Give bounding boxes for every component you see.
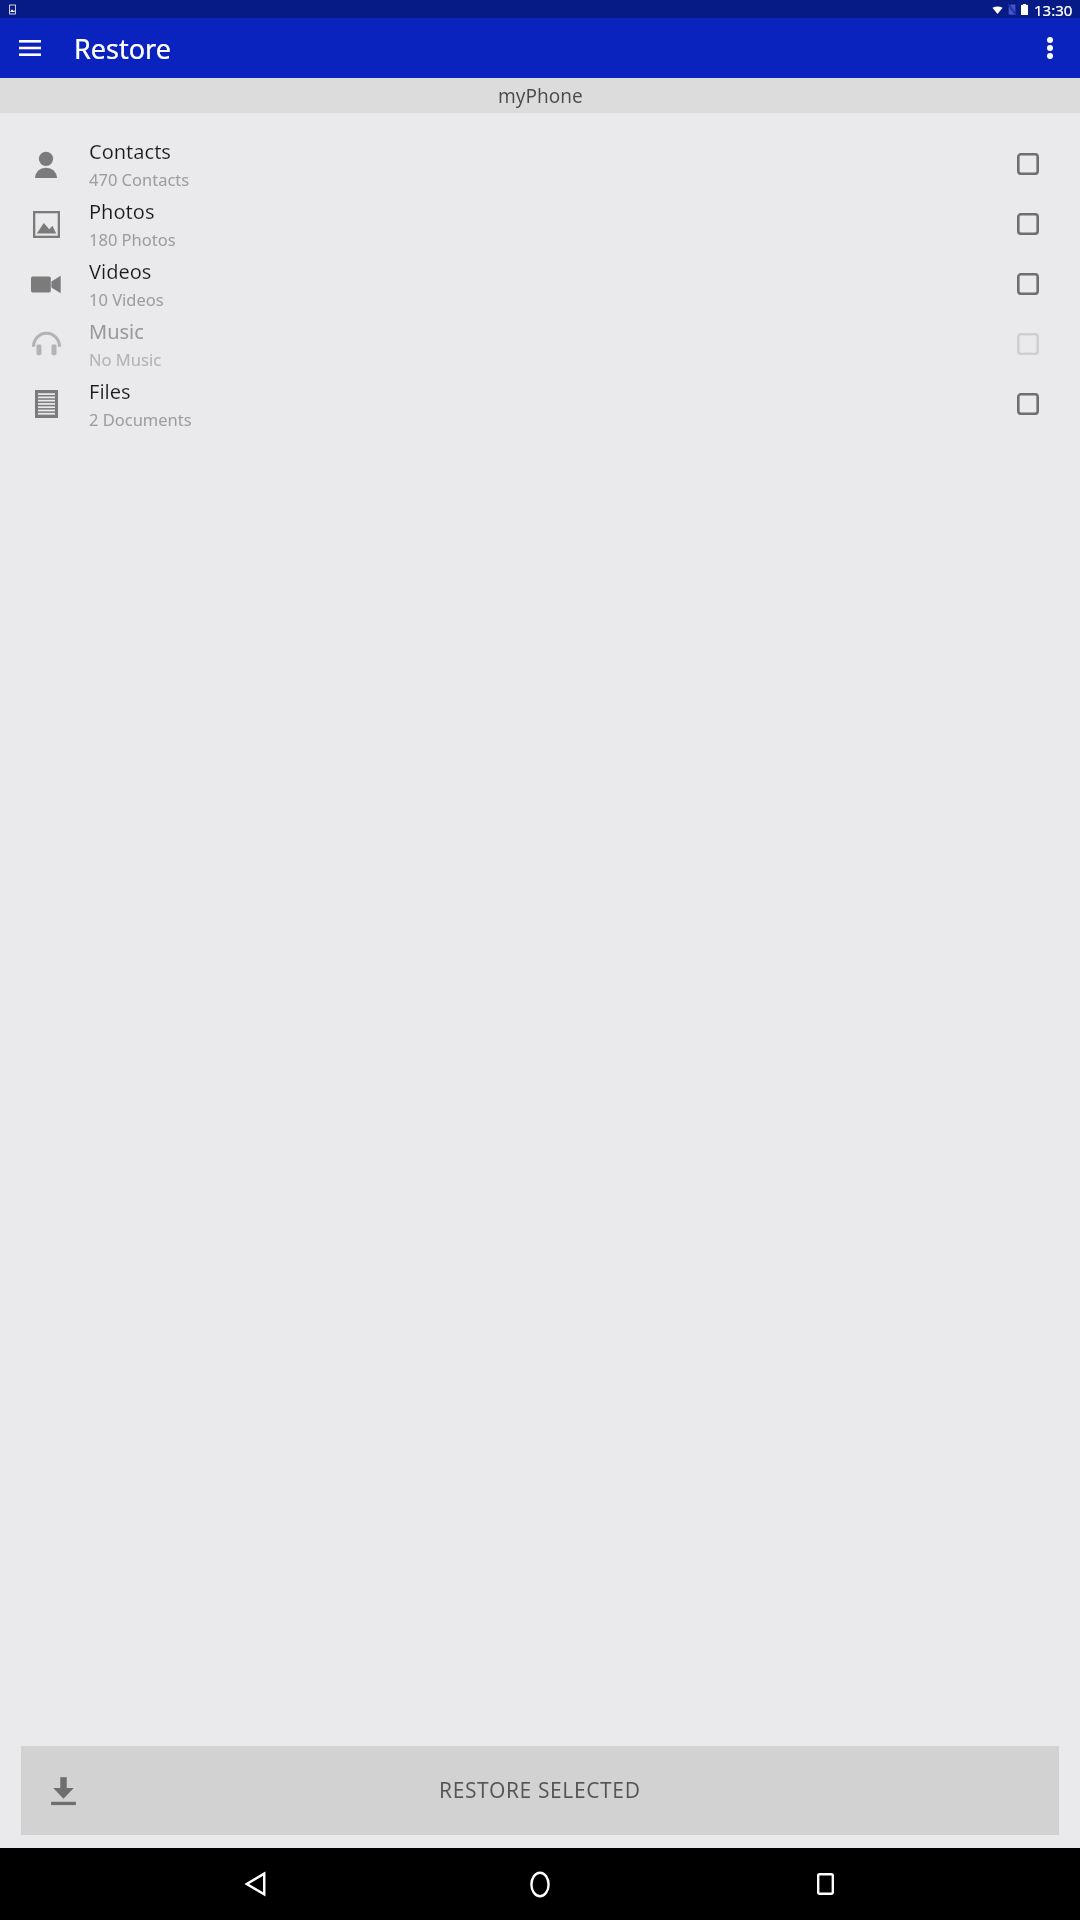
button[interactable]: More options — [1030, 28, 1070, 68]
staticText: Restore — [74, 30, 171, 67]
staticText: Contacts — [89, 138, 171, 165]
staticText: Music — [89, 318, 144, 345]
button[interactable]: Select Contacts — [1008, 144, 1048, 184]
staticText: myPhone — [498, 83, 583, 109]
button[interactable]: Recent apps — [795, 1854, 855, 1914]
button[interactable]: Open navigation drawer — [12, 30, 48, 66]
button[interactable]: Select Files — [1008, 384, 1048, 424]
button[interactable]: Music — [0, 314, 1080, 374]
button[interactable]: Files — [0, 374, 1080, 434]
staticText: RESTORE SELECTED — [439, 1776, 641, 1805]
staticText: Photos — [89, 198, 155, 225]
button[interactable]: Photos — [0, 194, 1080, 254]
staticText: 470 Contacts — [89, 168, 190, 190]
staticText: 13:30 — [1034, 0, 1073, 18]
staticText: Files — [89, 378, 131, 405]
staticText: 2 Documents — [89, 408, 192, 430]
staticText: No Music — [89, 348, 162, 370]
button[interactable]: Select Videos — [1008, 264, 1048, 304]
button[interactable]: Contacts — [0, 134, 1080, 194]
staticText: 10 Videos — [89, 288, 164, 310]
staticText: Videos — [89, 258, 152, 285]
button[interactable]: Select Photos — [1008, 204, 1048, 244]
button[interactable]: Select Music — [1008, 324, 1048, 364]
button[interactable]: Back — [225, 1854, 285, 1914]
button[interactable]: Videos — [0, 254, 1080, 314]
button[interactable]: RESTORE SELECTED — [21, 1746, 1059, 1835]
button[interactable]: Home — [510, 1854, 570, 1914]
staticText: 180 Photos — [89, 228, 176, 250]
